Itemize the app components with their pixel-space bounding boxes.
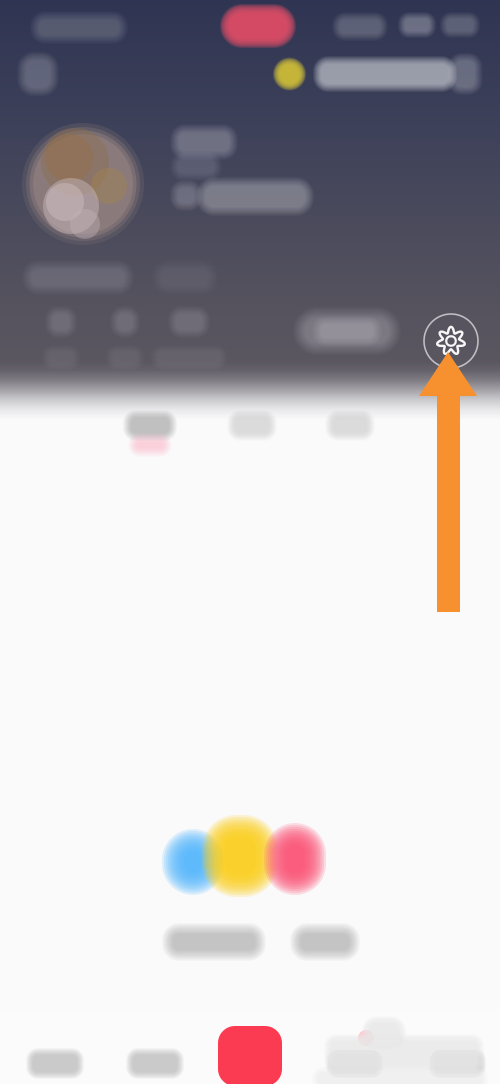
button[interactable] bbox=[215, 409, 289, 501]
button[interactable] bbox=[94, 306, 156, 370]
button[interactable]: More bbox=[443, 52, 487, 96]
button[interactable] bbox=[158, 306, 220, 370]
button[interactable] bbox=[289, 305, 405, 357]
button[interactable]: Scan bbox=[14, 52, 62, 96]
button[interactable] bbox=[313, 409, 387, 501]
button[interactable]: Create post bbox=[218, 1026, 282, 1084]
button[interactable]: Profile photo bbox=[21, 122, 145, 246]
button[interactable]: Settings bbox=[421, 311, 481, 371]
button[interactable] bbox=[113, 409, 187, 501]
button[interactable] bbox=[30, 306, 92, 370]
button[interactable]: Home bbox=[26, 1022, 74, 1082]
button[interactable]: Messages bbox=[326, 1022, 374, 1082]
button[interactable] bbox=[273, 52, 457, 96]
button[interactable]: Discover bbox=[126, 1022, 174, 1082]
button[interactable]: Me bbox=[428, 1022, 476, 1082]
